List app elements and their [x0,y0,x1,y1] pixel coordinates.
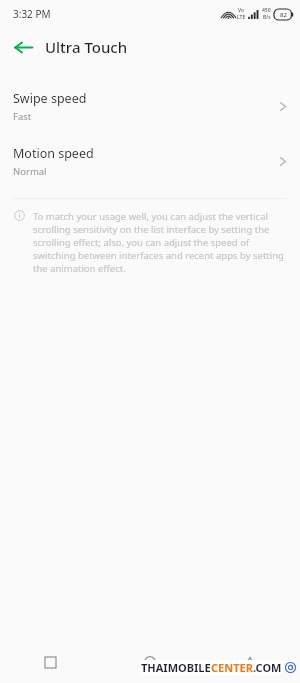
staticText: LTE [237,14,246,21]
staticText: Vo [238,7,245,14]
staticText: Swipe speed [13,90,87,107]
staticText: 82 [280,11,287,19]
button[interactable]: Back [200,641,300,683]
button[interactable]: Home [100,641,200,683]
staticText: 3:32 PM [13,7,51,21]
staticText: THAIMOBILE [141,660,211,675]
staticText: CENTER [211,660,253,675]
other: Battery [274,9,294,20]
button[interactable]: Motion speed [0,134,300,189]
staticText: Ultra Touch [45,37,128,57]
staticText: 450 [262,7,271,14]
staticText: Fast [13,110,32,123]
button[interactable]: Recents [0,641,100,683]
button[interactable]: Back [8,32,38,62]
staticText: To match your usage well, you can adjust… [33,210,286,275]
button[interactable]: Swipe speed [0,79,300,134]
staticText: .COM [253,660,282,675]
staticText: B/s [263,14,271,21]
staticText: Normal [13,165,47,178]
staticText: Motion speed [13,145,94,162]
